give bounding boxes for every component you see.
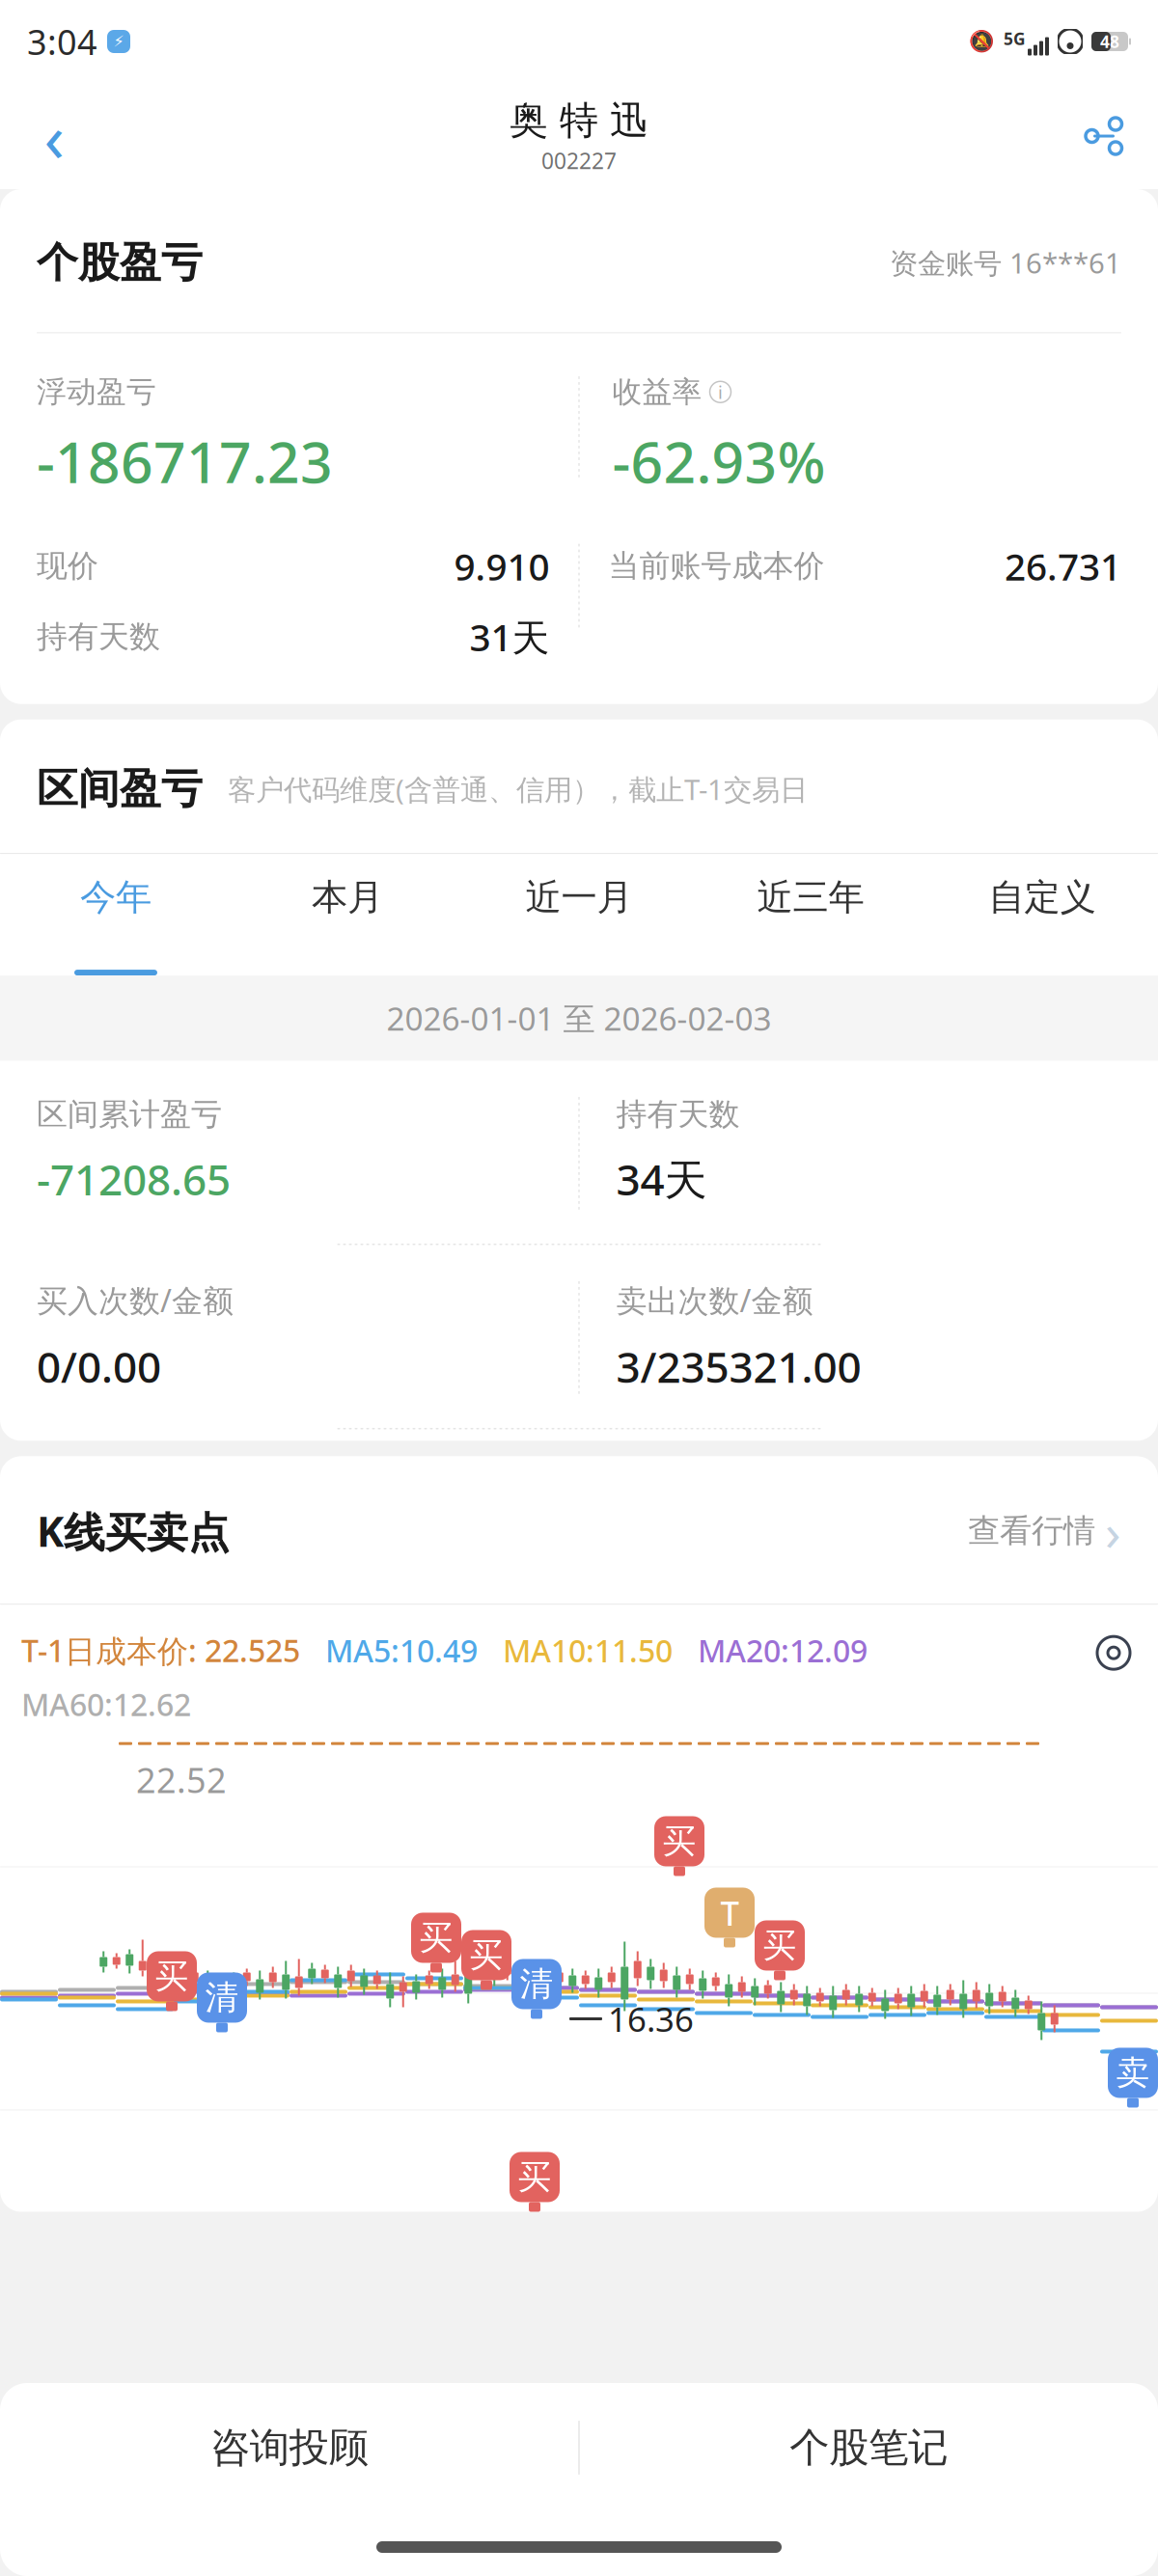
staticText: 区间盈亏: [37, 764, 203, 814]
staticText: 浮动盈亏: [37, 374, 156, 410]
staticText: 奥 特 迅: [510, 97, 648, 144]
staticText: 买: [155, 1956, 189, 1997]
staticText: ›: [1105, 1497, 1121, 1565]
staticText: 近三年: [757, 875, 864, 919]
button[interactable]: Back: [17, 99, 91, 173]
button[interactable]: 咨询投顾: [0, 2395, 579, 2501]
button[interactable]: 指标设置: [1090, 1630, 1137, 1676]
staticText: 9.910: [454, 541, 550, 591]
staticText: 买入次数/金额: [37, 1280, 234, 1321]
staticText: MA10:11.50: [503, 1630, 673, 1671]
staticText: 48: [1100, 30, 1119, 53]
staticText: 客户代码维度(含普通、信用），截止T-1交易日: [228, 770, 808, 808]
staticText: 今年: [80, 875, 152, 919]
button[interactable]: K线买卖点: [0, 1456, 1158, 1604]
staticText: 0/0.00: [37, 1338, 161, 1394]
staticText: 自定义: [989, 875, 1096, 919]
button[interactable]: 近一月: [463, 854, 695, 976]
staticText: 个股笔记: [790, 2423, 948, 2472]
staticText: 查看行情: [968, 1511, 1095, 1551]
staticText: 个股盈亏: [37, 237, 203, 288]
staticText: -186717.23: [37, 424, 333, 499]
button[interactable]: 今年: [0, 854, 232, 976]
staticText: 买: [763, 1925, 797, 1966]
staticText: -71208.65: [37, 1151, 231, 1207]
staticText: 清: [205, 1977, 239, 2018]
staticText: 31天: [469, 612, 550, 661]
staticText: 清: [520, 1964, 553, 2005]
button[interactable]: 个股笔记: [579, 2395, 1158, 2501]
staticText: MA5:10.49: [325, 1630, 478, 1671]
staticText: 2026-01-01 至 2026-02-03: [386, 997, 772, 1039]
staticText: 买: [662, 1821, 696, 1862]
staticText: K线买卖点: [37, 1503, 230, 1558]
staticText: 卖出次数/金额: [616, 1280, 813, 1321]
staticText: 卖: [1116, 2052, 1150, 2093]
staticText: 002227: [541, 146, 617, 175]
staticText: 买: [419, 1917, 453, 1958]
staticText: 持有天数: [616, 1095, 740, 1133]
button[interactable]: 自定义: [926, 854, 1158, 976]
staticText: 26.731: [1005, 541, 1121, 591]
staticText: 咨询投顾: [210, 2423, 368, 2472]
staticText: 区间累计盈亏: [37, 1095, 222, 1133]
staticText: 本月: [312, 875, 383, 919]
staticText: 3:04: [27, 18, 97, 65]
staticText: MA60:12.62: [21, 1684, 191, 1725]
staticText: 买: [518, 2157, 551, 2198]
staticText: 22.52: [136, 1757, 227, 1803]
staticText: 34天: [616, 1151, 707, 1207]
staticText: 3/235321.00: [616, 1338, 861, 1394]
staticText: 近一月: [525, 875, 633, 919]
staticText: 16.36: [608, 1997, 694, 2041]
staticText: 资金账号 16***61: [890, 244, 1121, 281]
staticText: i: [718, 380, 723, 404]
button[interactable]: 收益率说明: [710, 380, 731, 404]
button[interactable]: Share: [1067, 99, 1141, 173]
staticText: 收益率: [612, 374, 702, 410]
staticText: T: [720, 1891, 739, 1935]
staticText: -62.93%: [612, 424, 826, 499]
staticText: 持有天数: [37, 618, 160, 656]
staticText: ⚡︎: [113, 33, 124, 50]
staticText: 🔕: [969, 30, 995, 53]
button[interactable]: 本月: [232, 854, 463, 976]
staticText: T-1日成本价: 22.525: [21, 1630, 300, 1671]
staticText: MA20:12.09: [698, 1630, 868, 1671]
staticText: 当前账号成本价: [608, 547, 825, 585]
button[interactable]: 近三年: [695, 854, 926, 976]
staticText: 买: [469, 1935, 503, 1976]
staticText: 5G: [1004, 27, 1026, 50]
staticText: 现价: [37, 547, 98, 585]
staticText: ‹: [44, 92, 64, 181]
